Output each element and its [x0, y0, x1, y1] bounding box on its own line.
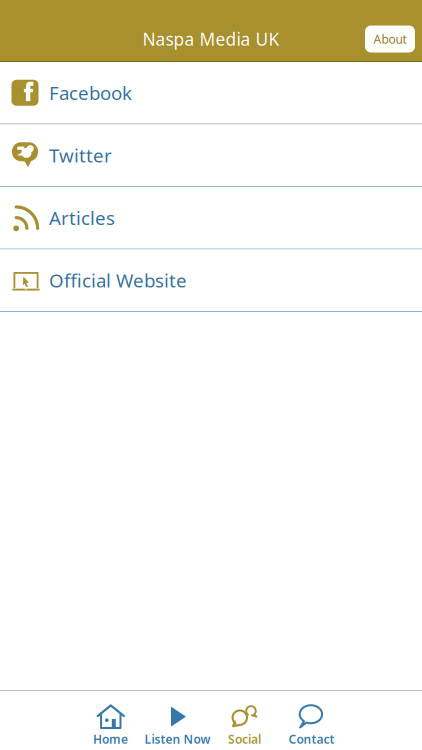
staticText: Facebook — [49, 80, 132, 105]
staticText: Articles — [49, 205, 115, 230]
button[interactable]: Contact — [278, 702, 345, 749]
staticText: About — [373, 31, 406, 47]
staticText: Listen Now — [144, 731, 210, 747]
button[interactable]: Articles — [0, 187, 422, 249]
button[interactable]: Official Website — [0, 249, 422, 312]
button[interactable]: Twitter — [0, 124, 422, 187]
staticText: Contact — [288, 731, 334, 747]
staticText: Naspa Media UK — [142, 27, 279, 50]
staticText: Home — [93, 731, 128, 747]
button[interactable]: Social — [211, 702, 278, 749]
staticText: Official Website — [49, 268, 187, 293]
button[interactable]: Listen Now — [144, 702, 211, 749]
button[interactable]: Home — [77, 702, 144, 749]
staticText: Social — [228, 731, 261, 747]
button[interactable]: About — [365, 25, 415, 52]
button[interactable]: Facebook — [0, 62, 422, 124]
staticText: Twitter — [49, 143, 112, 168]
